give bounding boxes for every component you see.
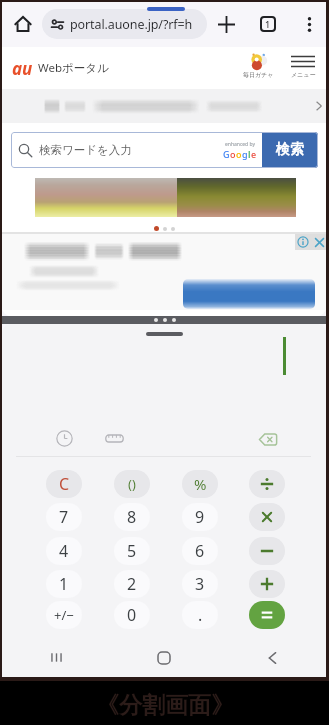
button[interactable]: History bbox=[51, 425, 77, 451]
staticText: () bbox=[128, 475, 136, 493]
staticText: 1 bbox=[265, 18, 271, 30]
button[interactable]: New tab bbox=[213, 11, 239, 37]
staticText: portal.auone.jp/?rf=h bbox=[70, 16, 193, 33]
staticText: o bbox=[236, 148, 242, 160]
button[interactable]: Home bbox=[9, 10, 37, 38]
button[interactable]: Subtract bbox=[249, 537, 285, 565]
staticText: 0 bbox=[127, 604, 137, 626]
button[interactable]: +/− bbox=[46, 601, 82, 629]
staticText: . bbox=[198, 604, 203, 626]
button[interactable]: Equals bbox=[249, 601, 285, 629]
staticText: g bbox=[242, 148, 248, 160]
staticText: 4 bbox=[59, 540, 69, 562]
button[interactable]: C bbox=[46, 470, 82, 498]
staticText: Webポータル bbox=[38, 60, 109, 76]
button[interactable]: portal.auone.jp/?rf=h bbox=[42, 9, 207, 39]
staticText: e bbox=[251, 148, 257, 160]
button[interactable]: () bbox=[114, 470, 150, 498]
button[interactable]: 検索 bbox=[262, 132, 318, 168]
staticText: 1 bbox=[59, 573, 69, 595]
staticText: 毎日ガチャ bbox=[243, 71, 274, 79]
button[interactable]: 毎日ガチャ bbox=[240, 53, 276, 79]
staticText: 9 bbox=[195, 506, 205, 528]
button[interactable]: 5 bbox=[114, 537, 150, 565]
staticText: C bbox=[59, 473, 70, 495]
staticText: 6 bbox=[195, 540, 205, 562]
staticText: o bbox=[230, 148, 236, 160]
button[interactable]: Ad info bbox=[295, 234, 311, 250]
staticText: G bbox=[223, 148, 230, 160]
button[interactable]: Recents bbox=[2, 646, 110, 669]
button[interactable]: 8 bbox=[114, 503, 150, 531]
staticText: enhanced by bbox=[225, 141, 256, 148]
button[interactable]: Tabs bbox=[255, 11, 281, 37]
staticText: 5 bbox=[127, 540, 137, 562]
button[interactable]: More options bbox=[296, 11, 322, 37]
staticText: メニュー bbox=[291, 71, 316, 79]
staticText: % bbox=[194, 474, 207, 494]
button[interactable]: . bbox=[182, 601, 218, 629]
staticText: 8 bbox=[127, 506, 137, 528]
staticText: 2 bbox=[127, 573, 137, 595]
button[interactable]: メニュー bbox=[285, 55, 321, 79]
button[interactable]: 6 bbox=[182, 537, 218, 565]
staticText: l bbox=[248, 148, 251, 160]
button[interactable]: Divide bbox=[249, 470, 285, 498]
button[interactable]: Unit converter bbox=[101, 425, 127, 451]
staticText: 《分割画面》 bbox=[96, 691, 234, 720]
button[interactable]: Close ad bbox=[311, 234, 326, 250]
button[interactable]: 7 bbox=[46, 503, 82, 531]
staticText: 3 bbox=[195, 573, 205, 595]
button[interactable]: 9 bbox=[182, 503, 218, 531]
button[interactable] bbox=[183, 279, 315, 309]
staticText: +/− bbox=[54, 606, 74, 624]
button[interactable]: Multiply bbox=[249, 503, 285, 531]
button[interactable]: 3 bbox=[182, 570, 218, 598]
staticText: 7 bbox=[59, 506, 69, 528]
button[interactable]: Backspace bbox=[254, 425, 282, 453]
staticText: au bbox=[12, 57, 33, 80]
button[interactable]: 4 bbox=[46, 537, 82, 565]
button[interactable]: Add bbox=[249, 570, 285, 598]
button[interactable]: Home bbox=[110, 646, 218, 669]
staticText: 検索 bbox=[276, 141, 304, 159]
staticText: 検索ワードを入力 bbox=[39, 143, 132, 157]
button[interactable]: 1 bbox=[46, 570, 82, 598]
button[interactable]: 2 bbox=[114, 570, 150, 598]
button[interactable]: 0 bbox=[114, 601, 150, 629]
button[interactable]: % bbox=[182, 470, 218, 498]
button[interactable]: Back bbox=[218, 646, 326, 669]
